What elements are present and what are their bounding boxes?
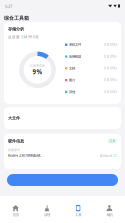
staticText: 工具 [75, 213, 81, 217]
button[interactable]: 大文件 [4, 107, 121, 129]
staticText: 清理 [44, 213, 50, 217]
staticText: 0 B (0%) [104, 90, 117, 94]
staticText: 系统文件 [69, 43, 81, 47]
staticText: 首页 [13, 213, 19, 217]
button[interactable]: 清理 [31, 202, 62, 220]
staticText: 文档 [69, 66, 75, 70]
staticText: 9% [32, 68, 42, 76]
staticText: 6:27 [5, 3, 12, 9]
staticText: 应用数据 [69, 54, 81, 59]
staticText: 我的 [106, 213, 112, 217]
staticText: 综合工具箱 [4, 15, 29, 21]
button[interactable]: 我的 [94, 202, 125, 220]
staticText: Android 12 [100, 154, 117, 158]
button[interactable] [7, 174, 118, 186]
button[interactable]: 首页 [0, 202, 31, 220]
staticText: 大文件 [8, 115, 20, 121]
staticText: Redmi 23078RKA5BC [8, 153, 41, 158]
staticText: 已使用空间 [30, 64, 45, 67]
staticText: 总容量 134.99 GB [8, 34, 38, 39]
staticText: 设备型号 [8, 148, 20, 152]
staticText: 0 B (0%) [104, 66, 117, 70]
staticText: 0 B (0%) [104, 54, 117, 59]
staticText: 存储分析 [8, 27, 24, 32]
staticText: 正常 [109, 139, 115, 143]
button[interactable]: 工具 [62, 202, 94, 220]
staticText: 图片 [69, 78, 75, 82]
staticText: 0 B (0%) [104, 78, 117, 82]
staticText: 0 B (0%) [104, 43, 117, 47]
staticText: 其他 [69, 90, 75, 94]
staticText: 硬件信息 [8, 138, 24, 144]
